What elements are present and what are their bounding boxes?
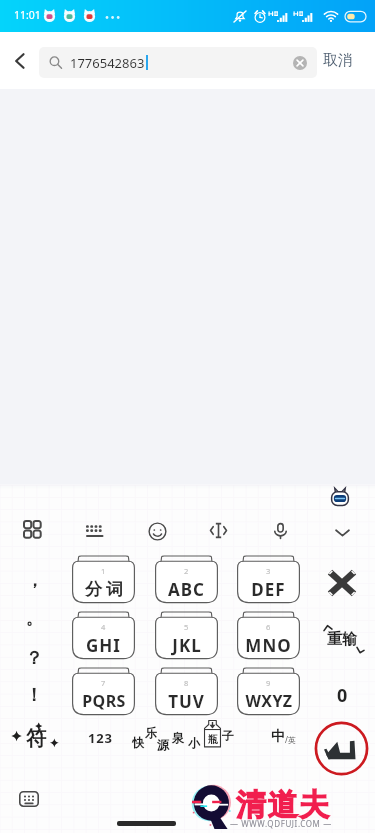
button[interactable]: Delete [320,566,364,600]
staticText: ， [26,570,43,591]
button[interactable]: 123 [76,724,124,752]
button[interactable]: ！ [18,680,50,710]
staticText: 11:01 [14,8,41,22]
button[interactable]: Cursor [199,516,237,544]
staticText: JKL [172,634,202,657]
staticText: 分词 [83,579,125,600]
button[interactable]: 。 [18,603,50,633]
staticText: 9 [266,678,271,688]
staticText: 6 [266,622,271,632]
staticText: 泉 [172,730,184,745]
button[interactable]: 5 [155,611,218,660]
staticText: 3 [266,566,271,576]
staticText: WXYZ [245,690,293,712]
staticText: /英 [285,734,296,745]
staticText: 。 [26,608,43,629]
button[interactable]: 2 [155,555,218,604]
button[interactable]: ， [18,565,50,595]
staticText: 8 [184,678,189,688]
button[interactable]: 1 [72,555,135,604]
button[interactable]: Hide keyboard [323,518,361,546]
button[interactable]: Assistant [328,486,352,510]
staticText: 5 [184,622,189,632]
staticText: — WWW.QDFUJI.COM — [230,818,332,829]
button[interactable]: Panel [14,516,52,544]
staticText: 源 [157,737,169,752]
staticText: 快 [132,735,144,750]
staticText: 清道夫 [236,786,331,824]
button[interactable]: 1776542863 [39,47,317,78]
button[interactable]: 取消 [323,32,375,89]
staticText: 瓶 [208,733,218,746]
staticText: 1 [101,566,106,576]
staticText: 7 [101,678,106,688]
button[interactable]: Keyboard layout [76,516,114,544]
button[interactable]: ？ [18,643,50,673]
staticText: ？ [25,647,43,670]
button[interactable]: 9 [237,667,300,716]
staticText: 符 [26,726,46,751]
button[interactable]: Voice input [261,516,299,544]
staticText: GHI [86,634,121,657]
staticText: 子 [222,728,234,743]
staticText: DEF [251,578,286,601]
staticText: TUV [168,690,205,713]
button[interactable]: 8 [155,667,218,716]
button[interactable]: 中 [262,722,304,752]
button[interactable]: Clear text [285,48,315,78]
staticText: ！ [25,684,43,707]
staticText: 小 [188,735,200,750]
button[interactable]: Enter [314,721,369,776]
button[interactable]: 6 [237,611,300,660]
staticText: 2 [184,566,189,576]
button[interactable]: 7 [72,667,135,716]
staticText: 重输 [327,630,357,649]
button[interactable]: Back [0,32,39,89]
staticText: 乐 [145,725,157,740]
button[interactable]: 3 [237,555,300,604]
staticText: PQRS [82,690,126,712]
button[interactable]: Space [128,716,238,758]
staticText: 1776542863 [70,54,145,72]
button[interactable]: 4 [72,611,135,660]
staticText: 取消 [323,51,353,70]
staticText: ABC [168,578,205,601]
button[interactable]: 符 [9,718,63,758]
button[interactable]: 重输 [317,620,367,658]
staticText: 0 [337,683,348,708]
button[interactable]: Emoji [138,517,176,545]
button[interactable]: Switch keyboard [16,788,42,810]
staticText: 123 [88,729,113,747]
staticText: 4 [101,622,106,632]
button[interactable]: 0 [320,680,364,710]
staticText: MNO [245,634,292,657]
staticText: 中 [271,728,285,746]
